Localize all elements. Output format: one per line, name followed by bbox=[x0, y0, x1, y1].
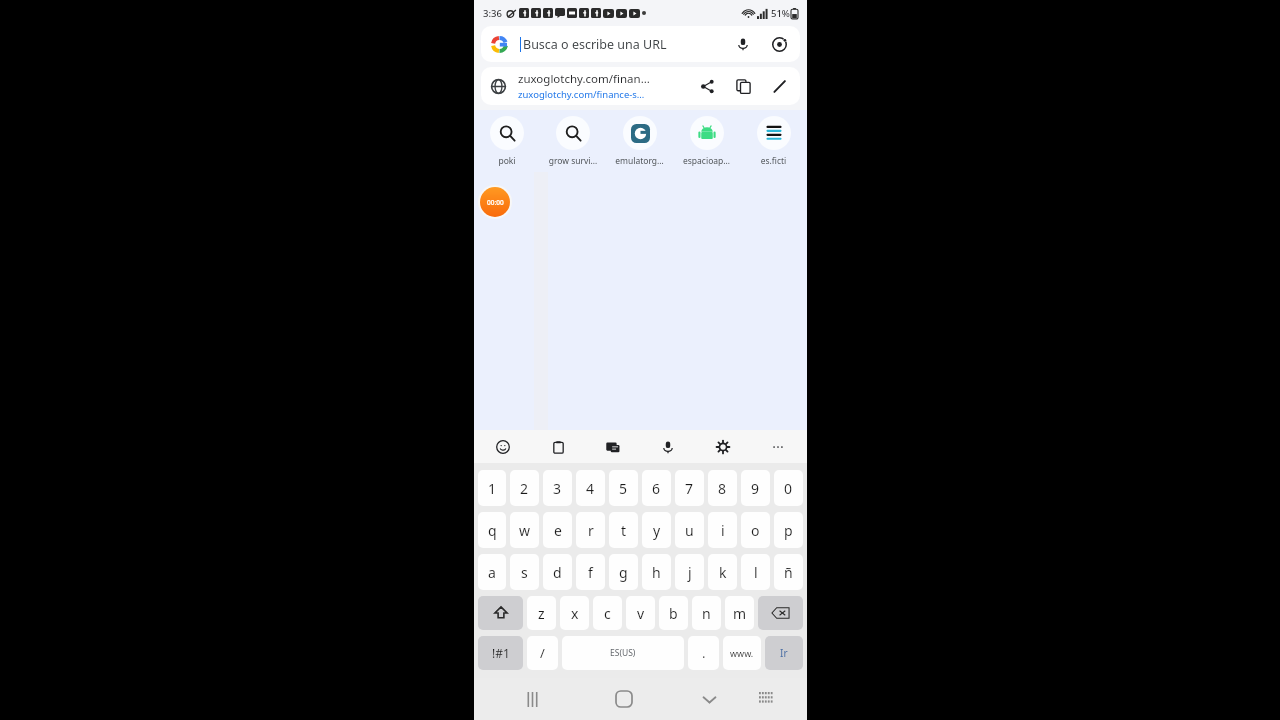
button[interactable]: h bbox=[642, 554, 671, 590]
button[interactable]: Voice input bbox=[655, 434, 681, 460]
button[interactable]: 0 bbox=[774, 470, 803, 506]
button[interactable]: p bbox=[774, 512, 803, 548]
button[interactable]: Keyboard modes bbox=[600, 434, 626, 460]
staticText: g bbox=[619, 563, 628, 582]
staticText: c bbox=[604, 604, 611, 623]
staticText: ES(US) bbox=[610, 647, 636, 659]
button[interactable]: z bbox=[527, 596, 556, 630]
staticText: d bbox=[553, 563, 562, 582]
button[interactable]: e bbox=[543, 512, 572, 548]
button[interactable]: g bbox=[609, 554, 638, 590]
staticText: y bbox=[653, 521, 661, 540]
button[interactable]: Ir bbox=[765, 636, 803, 670]
staticText: e bbox=[554, 521, 562, 540]
button[interactable]: grow survi… bbox=[540, 110, 606, 172]
staticText: 3:36 bbox=[483, 7, 502, 20]
button[interactable]: Edit bbox=[768, 75, 790, 97]
button[interactable]: espacioap… bbox=[673, 110, 740, 172]
button[interactable]: zuxoglotchy.com/finan… bbox=[481, 67, 800, 105]
button[interactable]: 3 bbox=[543, 470, 572, 506]
button[interactable]: 4 bbox=[576, 470, 605, 506]
button[interactable]: o bbox=[741, 512, 770, 548]
button[interactable]: Google Lens bbox=[768, 33, 790, 55]
staticText: 5 bbox=[619, 479, 628, 498]
button[interactable]: d bbox=[543, 554, 572, 590]
staticText: zuxoglotchy.com/finance-s… bbox=[518, 88, 645, 101]
staticText: . bbox=[702, 644, 706, 662]
button[interactable]: l bbox=[741, 554, 770, 590]
button[interactable]: i bbox=[708, 512, 737, 548]
button[interactable]: 5 bbox=[609, 470, 638, 506]
staticText: 6 bbox=[652, 479, 661, 498]
button[interactable]: b bbox=[659, 596, 688, 630]
button[interactable]: Hide keyboard bbox=[689, 679, 729, 719]
button[interactable]: v bbox=[626, 596, 655, 630]
button[interactable]: !#1 bbox=[478, 636, 523, 670]
staticText: 7 bbox=[685, 479, 694, 498]
button[interactable]: Settings bbox=[710, 434, 736, 460]
button[interactable]: emulatorg… bbox=[606, 110, 673, 172]
staticText: emulatorg… bbox=[606, 155, 673, 167]
button[interactable]: Shift bbox=[478, 596, 523, 630]
staticText: 51% bbox=[771, 7, 790, 20]
button[interactable]: c bbox=[593, 596, 622, 630]
button[interactable]: w bbox=[510, 512, 539, 548]
staticText: p bbox=[784, 521, 793, 540]
staticText: 2 bbox=[520, 479, 529, 498]
button[interactable]: Copy bbox=[732, 75, 754, 97]
button[interactable]: 1 bbox=[478, 470, 506, 506]
button[interactable]: Busca o escribe una URL bbox=[481, 26, 800, 62]
button[interactable]: Timer 00:00 bbox=[480, 187, 510, 217]
button[interactable]: es.ficti bbox=[740, 110, 807, 172]
button[interactable]: k bbox=[708, 554, 737, 590]
button[interactable]: f bbox=[576, 554, 605, 590]
button[interactable]: x bbox=[560, 596, 589, 630]
button[interactable]: Voice search bbox=[732, 33, 754, 55]
button[interactable]: Emoji bbox=[490, 434, 516, 460]
staticText: t bbox=[621, 521, 627, 540]
button[interactable]: . bbox=[688, 636, 719, 670]
staticText: 8 bbox=[718, 479, 727, 498]
staticText: r bbox=[588, 521, 594, 540]
button[interactable]: a bbox=[478, 554, 506, 590]
button[interactable]: ES(US) bbox=[562, 636, 684, 670]
staticText: 00:00 bbox=[487, 198, 504, 207]
button[interactable]: 9 bbox=[741, 470, 770, 506]
button[interactable]: Recent apps bbox=[512, 679, 552, 719]
button[interactable]: 6 bbox=[642, 470, 671, 506]
staticText: n bbox=[702, 604, 711, 623]
button[interactable]: y bbox=[642, 512, 671, 548]
staticText: u bbox=[685, 521, 694, 540]
staticText: !#1 bbox=[492, 645, 510, 661]
staticText: z bbox=[538, 604, 545, 623]
button[interactable]: More options bbox=[765, 434, 791, 460]
button[interactable]: Backspace bbox=[758, 596, 803, 630]
button[interactable]: j bbox=[675, 554, 704, 590]
button[interactable]: Home bbox=[604, 679, 644, 719]
button[interactable]: t bbox=[609, 512, 638, 548]
button[interactable]: m bbox=[725, 596, 754, 630]
button[interactable]: s bbox=[510, 554, 539, 590]
button[interactable]: www. bbox=[723, 636, 761, 670]
staticText: v bbox=[637, 604, 645, 623]
button[interactable]: q bbox=[478, 512, 506, 548]
button[interactable]: n bbox=[692, 596, 721, 630]
staticText: 9 bbox=[751, 479, 760, 498]
button[interactable]: Switch keyboard bbox=[746, 679, 786, 719]
button[interactable]: 8 bbox=[708, 470, 737, 506]
staticText: / bbox=[540, 644, 545, 662]
button[interactable]: r bbox=[576, 512, 605, 548]
button[interactable]: 7 bbox=[675, 470, 704, 506]
staticText: Ir bbox=[780, 646, 788, 660]
button[interactable]: Share bbox=[696, 75, 718, 97]
staticText: w bbox=[519, 521, 531, 540]
button[interactable]: u bbox=[675, 512, 704, 548]
staticText: espacioap… bbox=[673, 155, 740, 167]
button[interactable]: 2 bbox=[510, 470, 539, 506]
staticText: b bbox=[669, 604, 678, 623]
staticText: s bbox=[521, 563, 528, 582]
button[interactable]: poki bbox=[474, 110, 540, 172]
button[interactable]: Clipboard bbox=[545, 434, 571, 460]
button[interactable]: / bbox=[527, 636, 558, 670]
button[interactable]: ñ bbox=[774, 554, 803, 590]
